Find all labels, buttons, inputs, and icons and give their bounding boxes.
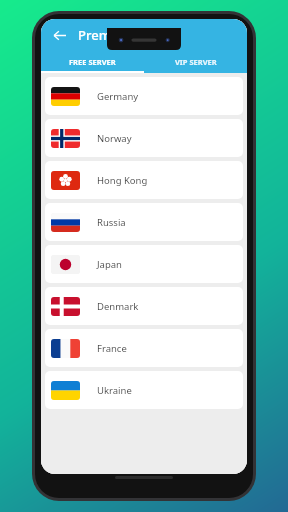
button[interactable]: Denmark xyxy=(45,287,243,325)
staticText: Hong Kong xyxy=(97,174,148,187)
staticText: Germany xyxy=(97,90,139,103)
staticText: VIP SERVER xyxy=(175,57,217,67)
staticText: Ukraine xyxy=(97,384,132,397)
button[interactable]: Russia xyxy=(45,203,243,241)
button[interactable]: Germany xyxy=(45,77,243,115)
button[interactable]: Japan xyxy=(45,245,243,283)
staticText: FREE SERVER xyxy=(69,57,116,67)
staticText: Russia xyxy=(97,216,126,229)
staticText: France xyxy=(97,342,127,355)
staticText: Prem xyxy=(78,26,111,44)
staticText: Denmark xyxy=(97,300,139,313)
button[interactable]: Ukraine xyxy=(45,371,243,409)
button[interactable]: FREE SERVER xyxy=(41,51,144,73)
button[interactable]: Norway xyxy=(45,119,243,157)
button[interactable]: France xyxy=(45,329,243,367)
button[interactable]: VIP SERVER xyxy=(144,51,247,73)
button[interactable]: Back xyxy=(49,25,69,45)
staticText: Japan xyxy=(97,258,122,271)
staticText: Norway xyxy=(97,132,132,145)
button[interactable]: Hong Kong xyxy=(45,161,243,199)
